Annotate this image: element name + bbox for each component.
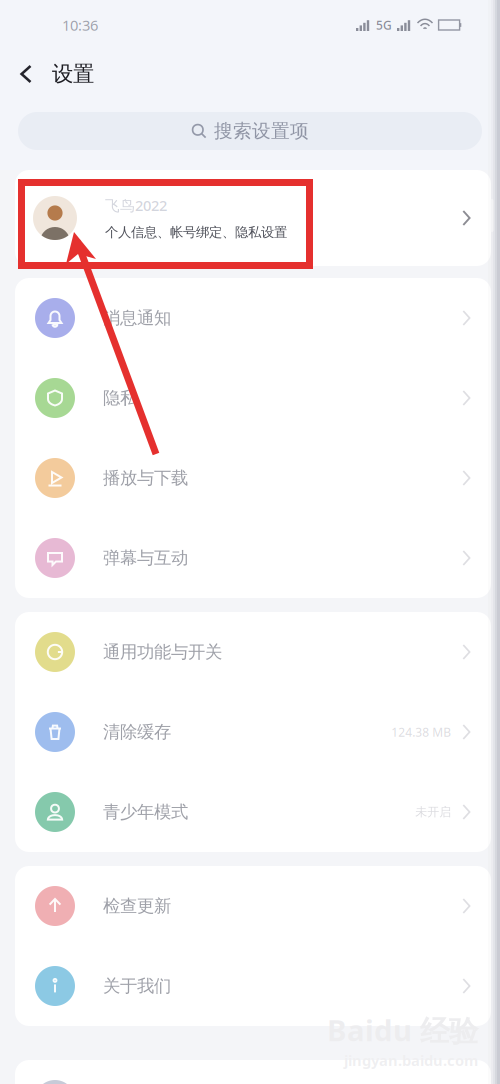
- staticText: 飞鸟2022: [105, 196, 167, 215]
- button[interactable]: 青少年模式: [15, 772, 491, 852]
- button[interactable]: 飞鸟2022: [15, 170, 491, 266]
- button[interactable]: 检查更新: [15, 866, 491, 946]
- staticText: 弹幕与互动: [103, 547, 188, 569]
- button[interactable]: 搜索设置项: [0, 98, 500, 170]
- staticText: 消息通知: [103, 307, 171, 329]
- button[interactable]: 消息通知: [15, 278, 491, 358]
- staticText: Baidu 经验: [327, 1010, 478, 1049]
- staticText: 隐私: [103, 387, 137, 409]
- staticText: 播放与下载: [103, 467, 188, 489]
- button[interactable]: 实验室: [15, 1060, 491, 1084]
- staticText: 个人信息、帐号绑定、隐私设置: [105, 224, 287, 240]
- button[interactable]: 通用功能与开关: [15, 612, 491, 692]
- staticText: 通用功能与开关: [103, 641, 222, 663]
- button[interactable]: 返回: [0, 50, 52, 98]
- button[interactable]: 播放与下载: [15, 438, 491, 518]
- staticText: 关于我们: [103, 975, 171, 997]
- staticText: 检查更新: [103, 895, 171, 917]
- button[interactable]: 清除缓存: [15, 692, 491, 772]
- button[interactable]: 弹幕与互动: [15, 518, 491, 598]
- staticText: 未开启: [415, 805, 451, 819]
- staticText: 10:36: [62, 15, 98, 35]
- staticText: jingyan.baidu.com: [344, 1050, 478, 1070]
- staticText: 5G: [376, 17, 392, 33]
- staticText: 设置: [52, 61, 94, 87]
- staticText: 搜索设置项: [214, 119, 309, 142]
- staticText: 青少年模式: [103, 801, 188, 823]
- button[interactable]: 关于我们: [15, 946, 491, 1026]
- staticText: 清除缓存: [103, 721, 171, 743]
- button[interactable]: 隐私: [15, 358, 491, 438]
- staticText: 124.38 MB: [391, 724, 451, 740]
